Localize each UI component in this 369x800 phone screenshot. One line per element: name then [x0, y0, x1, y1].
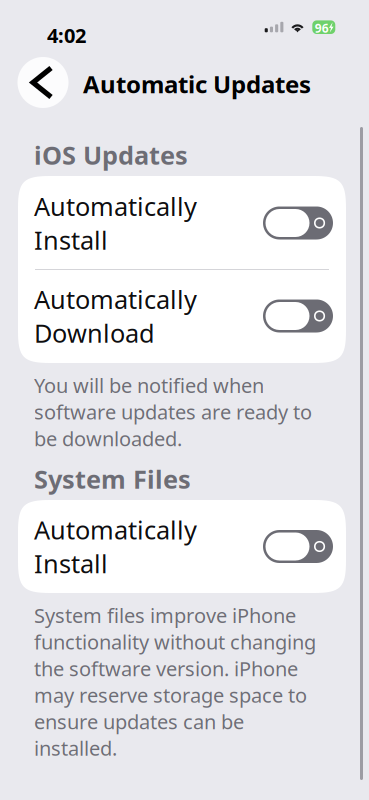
staticText: System Files — [34, 462, 191, 496]
staticText: Automatic Updates — [83, 68, 311, 100]
staticText: Automatically Download — [34, 282, 197, 350]
staticText: You will be notified when software updat… — [34, 372, 312, 452]
staticText: 96 — [315, 20, 329, 36]
staticText: Automatically Install — [34, 189, 197, 257]
staticText: System files improve iPhone functionalit… — [34, 602, 316, 761]
button[interactable]: Automatically Install — [18, 176, 346, 269]
staticText: 4:02 — [47, 22, 86, 49]
staticText: iOS Updates — [34, 138, 188, 172]
button[interactable]: Automatically Download — [18, 269, 346, 362]
staticText: Automatically Install — [34, 513, 197, 580]
button[interactable]: Back — [17, 57, 68, 108]
button[interactable]: Automatically Install — [18, 500, 346, 593]
